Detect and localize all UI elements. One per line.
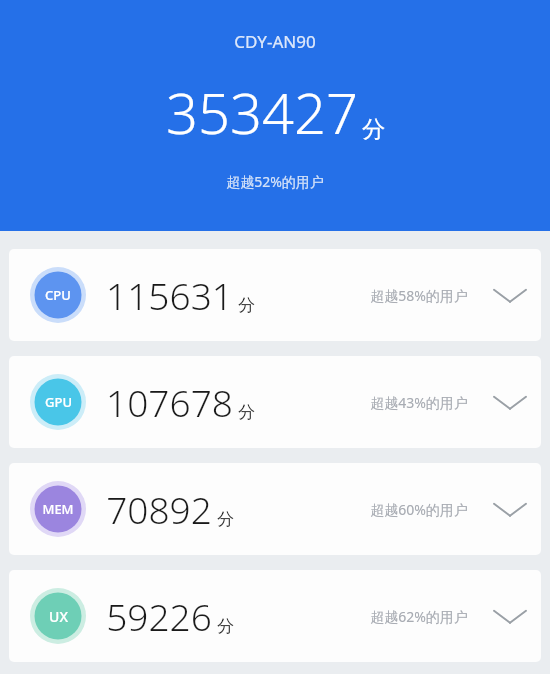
- button[interactable]: Expand details: [492, 601, 528, 631]
- staticText: 超越60%的用户: [370, 500, 468, 519]
- staticText: 分: [362, 115, 385, 144]
- staticText: 107678: [106, 377, 233, 427]
- staticText: 115631: [106, 270, 233, 320]
- staticText: UX: [49, 607, 68, 626]
- staticText: 分: [238, 295, 255, 316]
- staticText: 59226: [106, 591, 212, 641]
- button[interactable]: MEM: [9, 463, 541, 555]
- staticText: 分: [217, 509, 234, 530]
- staticText: 超越52%的用户: [226, 172, 324, 191]
- button[interactable]: Expand details: [492, 387, 528, 417]
- staticText: 70892: [106, 484, 212, 534]
- staticText: 超越58%的用户: [370, 286, 468, 305]
- staticText: 超越62%的用户: [370, 607, 468, 626]
- staticText: MEM: [42, 500, 74, 518]
- staticText: 超越43%的用户: [370, 393, 468, 412]
- button[interactable]: Expand details: [492, 494, 528, 524]
- button[interactable]: CPU: [9, 249, 541, 341]
- staticText: GPU: [45, 393, 72, 411]
- staticText: CPU: [45, 286, 71, 304]
- staticText: 353427: [166, 74, 358, 150]
- button[interactable]: UX: [9, 570, 541, 662]
- staticText: 分: [217, 616, 234, 637]
- button[interactable]: GPU: [9, 356, 541, 448]
- staticText: 分: [238, 402, 255, 423]
- staticText: CDY-AN90: [234, 30, 316, 53]
- button[interactable]: Expand details: [492, 280, 528, 310]
